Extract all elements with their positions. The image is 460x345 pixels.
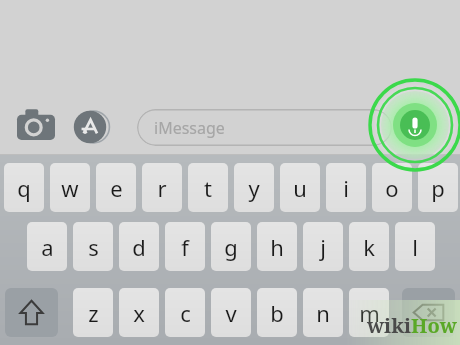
button[interactable]: t (188, 163, 228, 212)
staticText: n (316, 298, 330, 328)
staticText: z (88, 298, 99, 328)
staticText: x (133, 298, 145, 328)
staticText: b (270, 298, 284, 328)
staticText: iMessage (154, 117, 225, 139)
button[interactable]: o (372, 163, 412, 212)
button[interactable]: v (211, 288, 251, 337)
button[interactable]: c (165, 288, 205, 337)
button[interactable]: App Store (72, 109, 108, 145)
staticText: o (385, 173, 399, 203)
staticText: v (225, 298, 237, 328)
staticText: wiki (367, 312, 411, 339)
button[interactable]: q (4, 163, 44, 212)
button[interactable]: b (257, 288, 297, 337)
button[interactable]: Record audio message (367, 77, 460, 173)
button[interactable]: k (349, 222, 389, 271)
button[interactable]: z (73, 288, 113, 337)
staticText: s (88, 232, 99, 262)
button[interactable]: r (142, 163, 182, 212)
staticText: p (431, 173, 445, 203)
staticText: w (61, 173, 79, 203)
staticText: g (224, 232, 238, 262)
staticText: m (359, 298, 380, 328)
staticText: e (110, 173, 123, 203)
button[interactable]: u (280, 163, 320, 212)
staticText: t (204, 173, 212, 203)
staticText: r (157, 173, 167, 203)
button[interactable]: f (165, 222, 205, 271)
button[interactable]: i (326, 163, 366, 212)
button[interactable]: e (96, 163, 136, 212)
button[interactable]: Delete (402, 288, 455, 337)
staticText: j (320, 232, 326, 262)
button[interactable]: g (211, 222, 251, 271)
button[interactable]: d (119, 222, 159, 271)
button[interactable]: w (50, 163, 90, 212)
button[interactable]: n (303, 288, 343, 337)
button[interactable]: y (234, 163, 274, 212)
button[interactable]: s (73, 222, 113, 271)
staticText: l (412, 232, 418, 262)
button[interactable]: m (349, 288, 389, 337)
button[interactable]: l (395, 222, 435, 271)
button[interactable]: iMessage (137, 109, 392, 146)
staticText: i (343, 173, 349, 203)
staticText: y (248, 173, 260, 203)
button[interactable]: Camera (17, 108, 55, 142)
staticText: How (411, 312, 457, 339)
staticText: u (293, 173, 307, 203)
staticText: d (132, 232, 146, 262)
staticText: c (180, 298, 191, 328)
staticText: a (41, 232, 54, 262)
button[interactable]: h (257, 222, 297, 271)
staticText: q (17, 173, 31, 203)
button[interactable]: Shift (5, 288, 58, 337)
button[interactable]: j (303, 222, 343, 271)
button[interactable]: p (418, 163, 458, 212)
staticText: f (181, 232, 189, 262)
button[interactable]: a (27, 222, 67, 271)
staticText: h (270, 232, 284, 262)
button[interactable]: x (119, 288, 159, 337)
staticText: k (363, 232, 375, 262)
